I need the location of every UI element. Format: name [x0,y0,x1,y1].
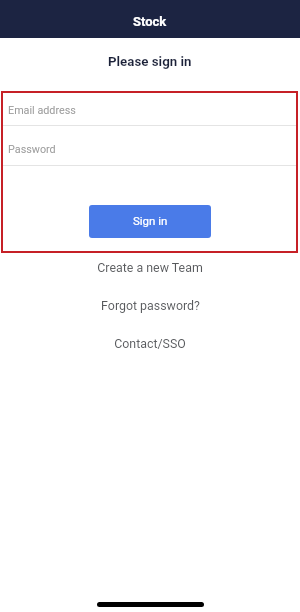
button[interactable]: Forgot password? [0,297,300,313]
staticText: Contact/SSO [114,336,186,351]
button[interactable]: Contact/SSO [0,335,300,351]
button[interactable]: Sign in [89,205,211,238]
staticText: Please sign in [108,54,192,70]
staticText: Sign in [133,214,168,227]
button[interactable]: Password [1,130,298,168]
staticText: Create a new Team [97,260,203,275]
staticText: Email address [8,104,76,117]
staticText: Stock [133,14,167,29]
staticText: Forgot password? [101,298,200,313]
staticText: Password [8,143,56,156]
button[interactable]: Email address [1,93,298,127]
button[interactable]: Create a new Team [0,259,300,275]
